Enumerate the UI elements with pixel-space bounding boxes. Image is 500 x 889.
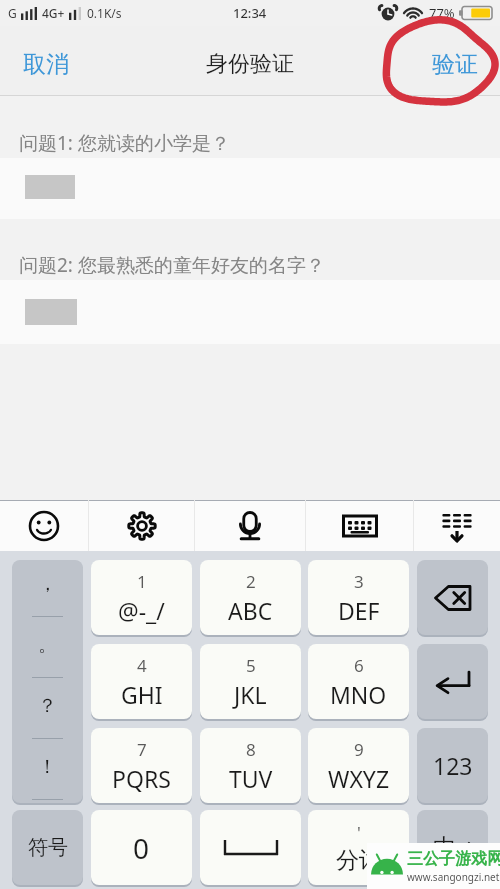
staticText: www.sangongzi.net [407,870,500,884]
staticText: 中 [433,833,456,862]
staticText: 身份验证 [206,50,294,78]
button[interactable]: Delete [417,560,488,635]
staticText: 分词 [336,846,382,875]
button[interactable]: ？ [12,681,83,742]
staticText: GHI [121,679,163,710]
button[interactable] [0,158,500,219]
staticText: G [8,5,17,21]
button[interactable]: 3 [308,560,409,635]
staticText: 7 [137,738,147,761]
button[interactable]: Space [200,810,301,885]
button[interactable]: 6 [308,644,409,719]
staticText: 3 [354,570,364,593]
staticText: 6 [354,654,364,677]
staticText: ！ [38,755,57,779]
staticText: 8 [246,738,256,761]
button[interactable]: 1 [91,560,192,635]
button[interactable]: ， [12,560,83,620]
staticText: 2 [246,570,256,593]
staticText: 77% [429,4,455,22]
button[interactable]: 123 [417,728,488,803]
staticText: 0.1K/s [87,5,122,21]
staticText: 。 [38,633,57,657]
button[interactable]: 8 [200,728,301,803]
staticText: 取消 [23,50,69,79]
button[interactable]: Settings [89,500,194,551]
staticText: 9 [354,738,364,761]
button[interactable]: ！ [12,742,83,803]
staticText: 符号 [28,835,68,860]
button[interactable]: 7 [91,728,192,803]
button[interactable]: 0 [91,810,192,885]
staticText: 0 [133,829,150,867]
button[interactable]: ' [308,810,409,885]
button[interactable]: Emoji [0,500,88,551]
staticText: ， [38,572,57,596]
button[interactable]: 5 [200,644,301,719]
staticText: 三公子游戏网 [407,849,500,869]
button[interactable]: 9 [308,728,409,803]
button[interactable]: 验证 [417,36,500,93]
button[interactable]: 2 [200,560,301,635]
staticText: TUV [229,763,273,794]
button[interactable]: Voice input [195,500,305,551]
button[interactable]: 符号 [12,810,83,885]
staticText: 12:34 [233,4,267,22]
staticText: @-_/ [118,595,165,626]
staticText: JKL [234,679,267,710]
staticText: ' [357,821,361,844]
button[interactable]: Hide keyboard [414,500,500,551]
staticText: 5 [246,654,256,677]
button[interactable]: Enter [417,644,488,719]
button[interactable]: 取消 [0,36,84,93]
staticText: 4 [137,654,147,677]
staticText: ABC [228,595,273,626]
button[interactable]: Keyboard layout [306,500,413,551]
staticText: MNO [330,679,387,710]
staticText: 验证 [432,50,478,79]
staticText: 问题2: 您最熟悉的童年好友的名字？ [19,252,325,278]
button[interactable]: 。 [12,620,83,681]
staticText: 1 [137,570,147,593]
staticText: ？ [38,694,57,718]
staticText: DEF [338,595,380,626]
staticText: 4G+ [42,5,65,21]
staticText: WXYZ [328,763,390,794]
staticText: 问题1: 您就读的小学是？ [19,130,230,156]
button[interactable] [0,280,500,344]
staticText: 123 [433,750,473,781]
button[interactable]: 4 [91,644,192,719]
button[interactable]: 中 [417,810,488,885]
staticText: PQRS [112,763,171,794]
